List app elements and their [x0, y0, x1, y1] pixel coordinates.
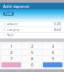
- staticText: Add expense: [3, 3, 29, 9]
- button[interactable]: 3: [43, 44, 62, 49]
- staticText: Amount: [7, 22, 18, 26]
- staticText: 0.00: [54, 22, 61, 26]
- staticText: 7: [10, 56, 12, 61]
- staticText: 8: [31, 56, 33, 61]
- staticText: Note: [7, 33, 14, 37]
- button[interactable]: 2: [22, 44, 42, 49]
- button[interactable]: 1: [1, 44, 21, 49]
- staticText: 2: [31, 43, 33, 49]
- staticText: 5: [31, 50, 33, 55]
- button[interactable]: 7: [1, 56, 21, 61]
- staticText: Cash: [5, 12, 12, 15]
- button[interactable]: Return: [43, 62, 62, 67]
- staticText: Category: [7, 28, 19, 31]
- staticText: 6: [52, 50, 54, 55]
- button[interactable]: Note: [0, 33, 64, 38]
- button[interactable]: Emoji: [1, 62, 21, 67]
- staticText: 3: [52, 43, 54, 49]
- staticText: 1: [10, 43, 12, 49]
- button[interactable]: 5: [22, 50, 42, 55]
- button[interactable]: 6: [43, 50, 62, 55]
- button[interactable]: 0: [22, 62, 42, 67]
- button[interactable]: 8: [22, 56, 42, 61]
- button[interactable]: Cash: [3, 12, 14, 16]
- button[interactable]: 9: [43, 56, 62, 61]
- staticText: Food: [54, 28, 61, 31]
- button[interactable]: Amount: [0, 22, 64, 27]
- button[interactable]: Category: [0, 27, 64, 32]
- staticText: 0: [31, 62, 33, 67]
- button[interactable]: 4: [1, 50, 21, 55]
- staticText: 4: [10, 50, 12, 55]
- staticText: 9: [52, 56, 54, 61]
